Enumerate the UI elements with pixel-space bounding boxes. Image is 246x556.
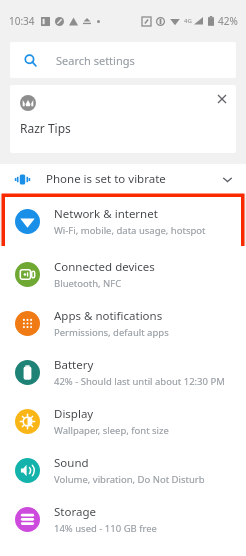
staticText: Sound <box>54 455 89 471</box>
staticText: Connected devices <box>54 259 155 275</box>
staticText: Display <box>54 406 94 422</box>
button[interactable]: Dismiss Razr Tips <box>213 90 231 108</box>
button[interactable]: Sound <box>0 446 246 495</box>
staticText: Wi-Fi, mobile, data usage, hotspot <box>54 224 206 237</box>
staticText: 42% - Should last until about 12:30 PM <box>54 375 225 388</box>
button[interactable]: Razr Tips <box>10 85 236 153</box>
staticText: Search settings <box>56 53 135 68</box>
staticText: Wallpaper, sleep, font size <box>54 424 169 437</box>
button[interactable]: Storage <box>0 495 246 544</box>
button[interactable]: Network & internet <box>5 197 241 246</box>
staticText: Permissions, default apps <box>54 326 169 339</box>
staticText: Network & internet <box>54 206 158 222</box>
button[interactable]: Phone is set to vibrate <box>0 164 246 194</box>
staticText: 4G <box>184 17 192 25</box>
staticText: 10:34 <box>9 14 35 28</box>
staticText: Phone is set to vibrate <box>46 171 166 187</box>
button[interactable]: Display <box>0 397 246 446</box>
staticText: 14% used - 110 GB free <box>54 522 157 535</box>
staticText: Bluetooth, NFC <box>54 277 122 290</box>
staticText: Apps & notifications <box>54 308 163 324</box>
staticText: Storage <box>54 504 96 520</box>
staticText: Battery <box>54 357 94 373</box>
staticText: Volume, vibration, Do Not Disturb <box>54 473 205 486</box>
button[interactable]: Connected devices <box>0 250 246 299</box>
staticText: 42% <box>218 14 238 28</box>
button[interactable]: Search settings <box>10 42 236 78</box>
staticText: Razr Tips <box>20 120 71 136</box>
button[interactable]: Apps & notifications <box>0 299 246 348</box>
button[interactable]: Battery <box>0 348 246 397</box>
